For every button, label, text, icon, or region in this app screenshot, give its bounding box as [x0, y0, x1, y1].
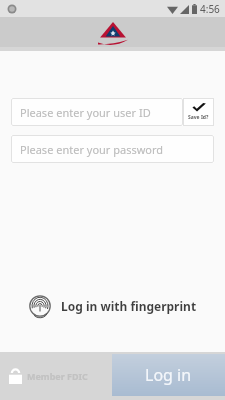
button[interactable]: Please enter your password [11, 135, 214, 163]
staticText: Please enter your password [20, 142, 164, 157]
staticText: Log in [145, 364, 192, 386]
button[interactable]: Log in [112, 354, 225, 396]
button[interactable]: Member FDIC [0, 352, 112, 400]
staticText: Save Id? [188, 114, 209, 121]
staticText: Member FDIC [27, 370, 88, 382]
staticText: 4:56 [200, 2, 220, 16]
staticText: Please enter your user ID [20, 105, 151, 120]
staticText: Log in with fingerprint [61, 298, 197, 314]
button[interactable]: Log in with fingerprint [19, 291, 207, 321]
button[interactable]: Please enter your user ID [11, 98, 183, 126]
button[interactable]: Save Id [183, 98, 214, 126]
